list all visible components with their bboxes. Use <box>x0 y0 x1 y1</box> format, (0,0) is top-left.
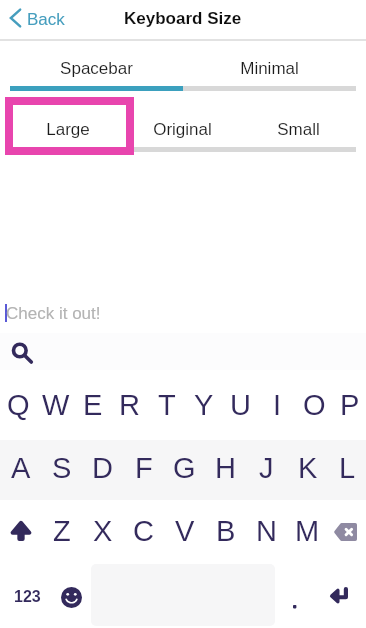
staticText: Large <box>46 120 90 139</box>
button[interactable]: M <box>287 503 328 559</box>
staticText: Keyboard Size <box>124 9 242 28</box>
staticText: G <box>173 452 196 484</box>
button[interactable]: B <box>205 503 246 559</box>
staticText: B <box>216 515 236 547</box>
staticText: I <box>273 389 282 421</box>
button[interactable]: Large <box>10 116 125 142</box>
staticText: 123 <box>14 588 41 606</box>
button[interactable]: W <box>37 377 74 433</box>
button[interactable]: G <box>164 440 205 496</box>
button[interactable]: U <box>222 377 259 433</box>
staticText: Y <box>194 389 214 421</box>
staticText: Spacebar <box>60 59 133 78</box>
button[interactable]: Shift <box>0 503 41 559</box>
button[interactable]: J <box>246 440 287 496</box>
button[interactable]: Emoji <box>51 564 92 628</box>
staticText: S <box>52 452 72 484</box>
button[interactable]: S <box>41 440 82 496</box>
staticText: O <box>303 389 326 421</box>
button[interactable]: L <box>328 440 366 496</box>
staticText: P <box>340 389 360 421</box>
button[interactable]: Backspace <box>328 503 366 559</box>
button[interactable] <box>280 564 308 628</box>
button[interactable]: D <box>82 440 123 496</box>
staticText: H <box>215 452 236 484</box>
staticText: R <box>119 389 140 421</box>
staticText: L <box>339 452 356 484</box>
staticText: Original <box>153 120 212 139</box>
button[interactable]: Minimal <box>183 55 356 81</box>
button[interactable]: Search <box>6 336 38 368</box>
staticText: X <box>93 515 113 547</box>
button[interactable]: R <box>111 377 148 433</box>
button[interactable]: I <box>259 377 296 433</box>
staticText: C <box>133 515 154 547</box>
button[interactable]: P <box>333 377 366 433</box>
button[interactable]: N <box>246 503 287 559</box>
staticText: J <box>259 452 274 484</box>
button[interactable]: 123 <box>7 564 47 628</box>
staticText: T <box>158 389 176 421</box>
button[interactable]: Back <box>0 0 75 39</box>
staticText: Check it out! <box>6 304 101 323</box>
staticText: Minimal <box>240 59 299 78</box>
staticText: M <box>295 515 320 547</box>
staticText: U <box>230 389 251 421</box>
staticText: A <box>11 452 31 484</box>
button[interactable]: H <box>205 440 246 496</box>
staticText: Z <box>53 515 71 547</box>
staticText: K <box>298 452 318 484</box>
button[interactable]: Q <box>0 377 37 433</box>
staticText: Back <box>27 10 65 29</box>
button[interactable]: X <box>82 503 123 559</box>
staticText: V <box>175 515 195 547</box>
button[interactable]: Small <box>241 116 356 142</box>
staticText: N <box>256 515 277 547</box>
button[interactable]: Original <box>125 116 240 142</box>
button[interactable]: T <box>148 377 185 433</box>
staticText: F <box>135 452 153 484</box>
button[interactable]: K <box>287 440 328 496</box>
button[interactable]: O <box>296 377 333 433</box>
button[interactable]: E <box>74 377 111 433</box>
button[interactable]: Spacebar <box>10 55 183 81</box>
button[interactable]: V <box>164 503 205 559</box>
staticText: E <box>83 389 103 421</box>
staticText: Small <box>277 120 320 139</box>
staticText: W <box>42 389 70 421</box>
button[interactable]: F <box>123 440 164 496</box>
button[interactable]: Return <box>319 564 359 628</box>
button[interactable]: Y <box>185 377 222 433</box>
staticText: D <box>92 452 113 484</box>
staticText: Q <box>7 389 30 421</box>
button[interactable]: C <box>123 503 164 559</box>
button[interactable]: A <box>0 440 41 496</box>
button[interactable]: Z <box>41 503 82 559</box>
